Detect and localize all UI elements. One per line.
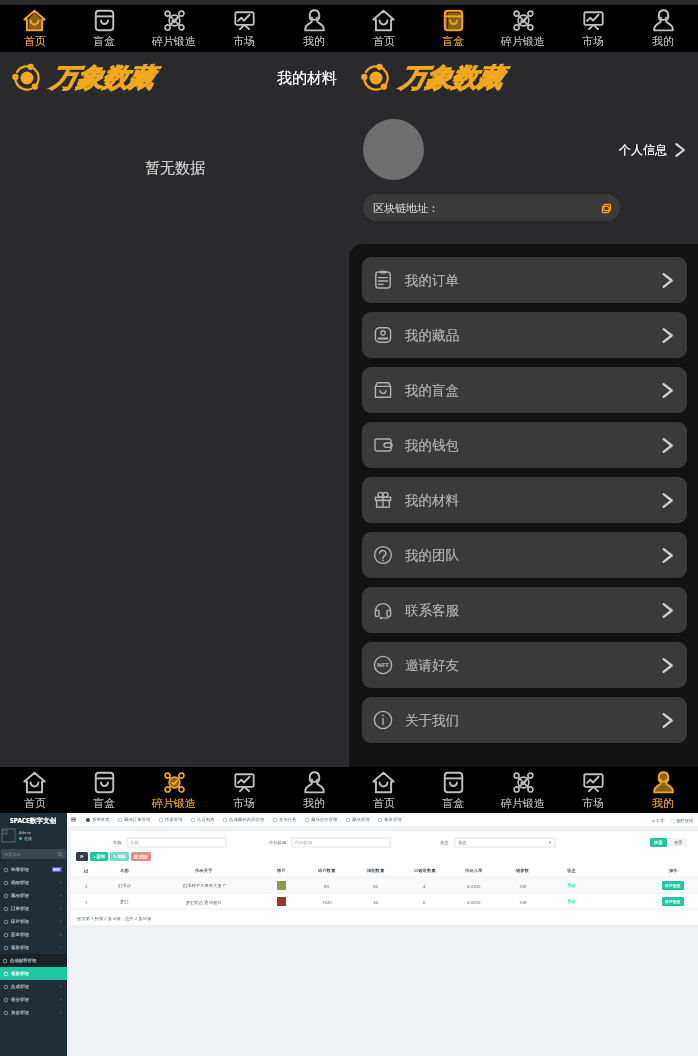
button[interactable]: 积分管理 xyxy=(0,993,67,1006)
button[interactable]: ⬚ 侧栏收缩 xyxy=(671,817,694,823)
button[interactable]: 认证列表 xyxy=(187,817,219,823)
button[interactable]: 状态 xyxy=(455,838,555,847)
button[interactable]: 资金管理 xyxy=(0,1006,67,1019)
staticText: 碎片锻造 xyxy=(152,796,196,810)
button[interactable]: 发放任务 xyxy=(269,817,301,823)
staticText: 作品几率 xyxy=(465,868,483,873)
staticText: 0.0200 xyxy=(467,899,481,905)
button[interactable]: 名称 xyxy=(127,838,226,847)
button[interactable]: 盲盒 xyxy=(69,767,139,813)
button[interactable]: 藏品分区管理 xyxy=(301,817,342,823)
button[interactable]: ▤ 删除 xyxy=(131,852,151,861)
button[interactable]: 盲盒 xyxy=(69,5,139,52)
button[interactable]: 系统首页 xyxy=(82,817,114,823)
button[interactable]: 碎片设置 xyxy=(662,897,684,906)
button[interactable]: 作品标题 xyxy=(292,838,390,847)
button[interactable]: 1 xyxy=(71,894,698,909)
button[interactable]: 盲盒 xyxy=(418,5,488,52)
button[interactable]: 盲盒 xyxy=(418,767,488,813)
button[interactable]: 重置 xyxy=(670,838,687,847)
button[interactable]: 搜索 xyxy=(650,838,667,847)
button[interactable]: 板块管理 xyxy=(374,817,406,823)
button[interactable]: 我的 xyxy=(279,767,349,813)
button[interactable]: 市场 xyxy=(209,5,279,52)
button[interactable]: 我的藏品 xyxy=(362,312,687,358)
staticText: 搜索菜单 xyxy=(4,852,21,857)
button[interactable]: 首页 xyxy=(349,5,418,52)
button[interactable]: 订单管理 xyxy=(0,902,67,915)
button[interactable]: 我的团队 xyxy=(362,532,687,578)
button[interactable]: 碎片锻造 xyxy=(488,767,558,813)
button[interactable]: 首页 xyxy=(0,5,69,52)
button[interactable]: 我的 xyxy=(279,5,349,52)
button[interactable]: ✎ 编辑 xyxy=(110,852,129,861)
staticText: 108 xyxy=(519,883,527,889)
button[interactable]: 作家管理 xyxy=(155,817,187,823)
staticText: 108 xyxy=(519,899,527,905)
staticText: 在线 xyxy=(24,836,32,841)
button[interactable]: ⟳ xyxy=(76,852,88,861)
button[interactable]: 权限管理 xyxy=(0,876,67,889)
button[interactable]: 我的钱包 xyxy=(362,422,687,468)
staticText: ▤ 删除 xyxy=(134,854,148,860)
staticText: 藏品订单管理 xyxy=(124,817,151,823)
staticText: Admin xyxy=(19,830,32,835)
button[interactable]: 首页 xyxy=(0,767,69,813)
staticText: 碎片锻造 xyxy=(501,796,545,810)
button[interactable]: 合成材料管理 xyxy=(0,954,67,967)
staticText: 碎片设置 xyxy=(665,899,681,904)
staticText: 4 xyxy=(423,883,426,889)
button[interactable]: 合成管理 xyxy=(0,980,67,993)
staticText: 发放任务 xyxy=(279,817,297,823)
button[interactable]: ⌂ 工作 xyxy=(652,817,665,823)
button[interactable]: 2 xyxy=(71,878,698,893)
button[interactable]: 我的 xyxy=(628,5,698,52)
button[interactable]: 搜索菜单 xyxy=(1,849,66,859)
button[interactable]: + 新增 xyxy=(90,852,108,861)
button[interactable]: 藏品管理 xyxy=(0,889,67,902)
button[interactable]: 轮播管理 xyxy=(0,863,67,876)
button[interactable]: 藏品订单管理 xyxy=(114,817,155,823)
staticText: 作品标题 xyxy=(269,840,287,845)
staticText: id xyxy=(84,868,89,874)
staticText: 市场 xyxy=(582,796,604,810)
button[interactable]: 碎片锻造 xyxy=(139,5,209,52)
button[interactable]: 盲盒管理 xyxy=(0,928,67,941)
button[interactable]: 碎片锻造 xyxy=(139,767,209,813)
button[interactable]: 市场 xyxy=(209,767,279,813)
button[interactable]: 我的 xyxy=(628,767,698,813)
staticText: 我的订单 xyxy=(405,272,459,289)
button[interactable]: 首页 xyxy=(349,767,418,813)
staticText: 我的藏品 xyxy=(405,327,459,344)
button[interactable]: 板块管理 xyxy=(0,967,67,980)
staticText: - xyxy=(60,944,62,951)
button[interactable]: 联系客服 xyxy=(362,587,687,633)
button[interactable]: 板块管理 xyxy=(0,941,67,954)
staticText: › xyxy=(60,918,62,925)
button[interactable]: 区块链地址： xyxy=(363,194,620,221)
button[interactable]: 碎片管理 xyxy=(0,915,67,928)
staticText: 权限管理 xyxy=(11,880,29,886)
button[interactable]: 关于我们 xyxy=(362,697,687,743)
staticText: 80 xyxy=(324,883,329,889)
button[interactable]: 市场 xyxy=(558,5,628,52)
button[interactable]: 个人信息 xyxy=(619,142,687,157)
staticText: 板块管理 xyxy=(11,945,29,951)
staticText: ⟳ xyxy=(80,854,84,859)
staticText: 首页 xyxy=(373,796,395,810)
button[interactable]: 合成藏品内容管理 xyxy=(219,817,269,823)
button[interactable]: 藏品管理 xyxy=(342,817,374,823)
staticText: 碎片锻造 xyxy=(152,34,196,48)
staticText: 作品标题 xyxy=(295,840,313,845)
button[interactable]: 我的订单 xyxy=(362,257,687,303)
staticText: 万象数藏 xyxy=(399,62,501,95)
button[interactable]: 我的盲盒 xyxy=(362,367,687,413)
button[interactable]: 碎片设置 xyxy=(662,881,684,890)
button[interactable]: 碎片锻造 xyxy=(488,5,558,52)
staticText: 0.0300 xyxy=(467,883,481,889)
staticText: 盲盒管理 xyxy=(11,932,29,938)
button[interactable]: 市场 xyxy=(558,767,628,813)
button[interactable]: 我的材料 xyxy=(362,477,687,523)
button[interactable]: NFT xyxy=(362,642,687,688)
staticText: 限制数量 xyxy=(367,868,385,873)
